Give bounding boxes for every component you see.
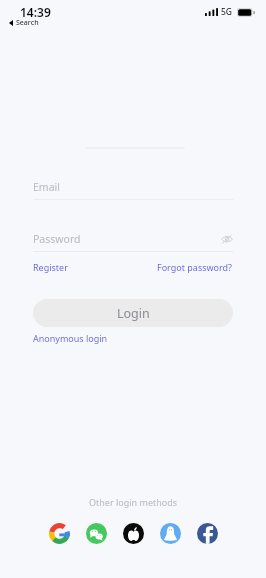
button[interactable]: Login [33,299,233,327]
button[interactable]: Sign in with Google [49,523,70,544]
button[interactable]: Forgot password? [157,261,233,273]
button[interactable]: Sign in with WeChat [86,523,107,544]
button[interactable]: Register [33,261,68,273]
staticText: Login [117,305,150,322]
staticText: Search [16,18,39,28]
staticText: 14:39 [20,4,51,20]
staticText: 5G [221,6,233,18]
staticText: Register [33,261,68,273]
button[interactable]: Email [33,180,233,200]
staticText: Other login methods [89,496,178,508]
other: Show password [221,234,233,244]
button[interactable]: Sign in with QQ [160,523,181,544]
staticText: Password [33,232,221,246]
button[interactable]: Sign in with Facebook [197,523,218,544]
staticText: Forgot password? [157,261,233,273]
staticText: Anonymous login [33,332,108,344]
button[interactable]: Password [33,232,233,252]
staticText: Email [33,180,233,194]
button[interactable]: Sign in with Apple [123,523,144,544]
button[interactable]: Anonymous login [33,332,108,344]
